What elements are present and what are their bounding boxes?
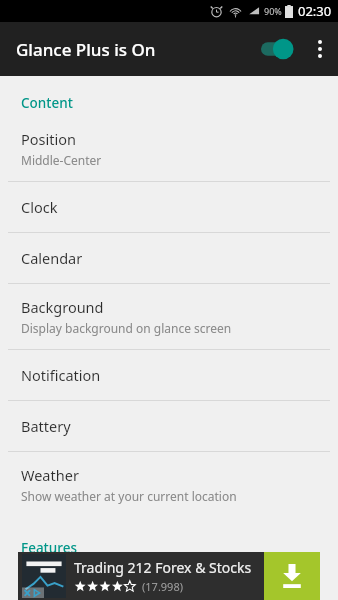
button[interactable]: Position (0, 116, 338, 181)
staticText: 02:30 (298, 2, 332, 20)
staticText: Show weather at your current location (21, 488, 237, 504)
button[interactable]: Install (264, 552, 320, 600)
button[interactable]: Background (0, 284, 338, 349)
staticText: Notification (21, 365, 101, 385)
staticText: Display background on glance screen (21, 320, 232, 336)
staticText: Trading 212 Forex & Stocks (74, 558, 252, 577)
staticText: Battery (21, 416, 71, 436)
staticText: Middle-Center (21, 152, 102, 168)
button[interactable]: Weather (0, 452, 338, 517)
staticText: Background (21, 297, 104, 317)
button[interactable]: Trading 212 Forex & Stocks (18, 552, 338, 600)
staticText: Position (21, 129, 76, 149)
button[interactable]: Calendar (0, 233, 338, 283)
staticText: Weather (21, 465, 79, 485)
staticText: Features (21, 539, 338, 557)
staticText: Glance Plus is On (16, 38, 156, 61)
staticText: 90% (264, 5, 282, 17)
staticText: Clock (21, 197, 58, 217)
staticText: Content (21, 94, 338, 112)
staticText: Calendar (21, 248, 83, 268)
button[interactable]: Battery (0, 401, 338, 451)
button[interactable]: Clock (0, 182, 338, 232)
button[interactable]: More options (302, 31, 338, 67)
button[interactable]: Notification (0, 350, 338, 400)
staticText: (17.998) (142, 579, 184, 594)
button[interactable]: Toggle Glance Plus (258, 32, 302, 66)
